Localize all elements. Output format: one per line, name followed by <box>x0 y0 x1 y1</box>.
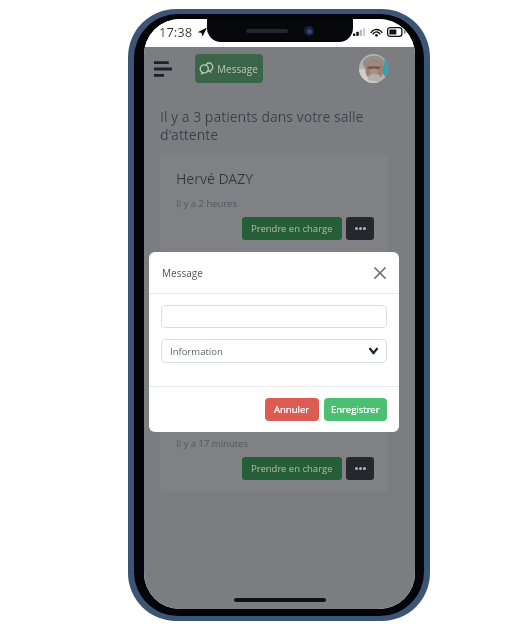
staticText: Prendre en charge <box>251 462 333 475</box>
button[interactable]: More options <box>346 457 374 480</box>
staticText: Il y a 3 patients dans votre salle d'att… <box>160 107 388 144</box>
staticText: 17:38 <box>159 23 193 41</box>
staticText: Il y a 45 minutes <box>176 317 248 330</box>
staticText: Annuler <box>274 403 310 416</box>
staticText: Marie LEROY <box>176 289 260 308</box>
staticText: Enregistrer <box>331 403 380 416</box>
button[interactable]: Information <box>161 339 387 363</box>
button[interactable]: Prendre en charge <box>242 457 342 480</box>
staticText: Paul BERNARD <box>176 409 272 428</box>
staticText: Il y a 17 minutes <box>176 437 248 450</box>
button[interactable]: Marie LEROY <box>160 275 388 372</box>
button[interactable]: Prendre en charge <box>242 217 342 240</box>
button[interactable] <box>161 305 387 328</box>
button[interactable]: Enregistrer <box>324 398 387 421</box>
button[interactable]: Profile <box>359 54 388 83</box>
staticText: Il y a 2 heures <box>176 197 237 210</box>
button[interactable]: Message <box>195 54 263 83</box>
button[interactable]: Paul BERNARD <box>160 395 388 492</box>
staticText: Hervé DAZY <box>176 169 254 188</box>
staticText: Information <box>170 345 223 358</box>
button[interactable]: Hervé DAZY <box>160 155 388 252</box>
staticText: Prendre en charge <box>251 222 333 235</box>
button[interactable]: More options <box>346 217 374 240</box>
button[interactable]: Annuler <box>265 398 319 421</box>
button[interactable]: Prendre en charge <box>242 337 342 360</box>
staticText: Message <box>217 62 258 76</box>
staticText: Message <box>162 266 203 280</box>
button[interactable]: More options <box>346 337 374 360</box>
button[interactable]: Close <box>372 265 388 281</box>
button[interactable]: Menu <box>150 56 176 82</box>
